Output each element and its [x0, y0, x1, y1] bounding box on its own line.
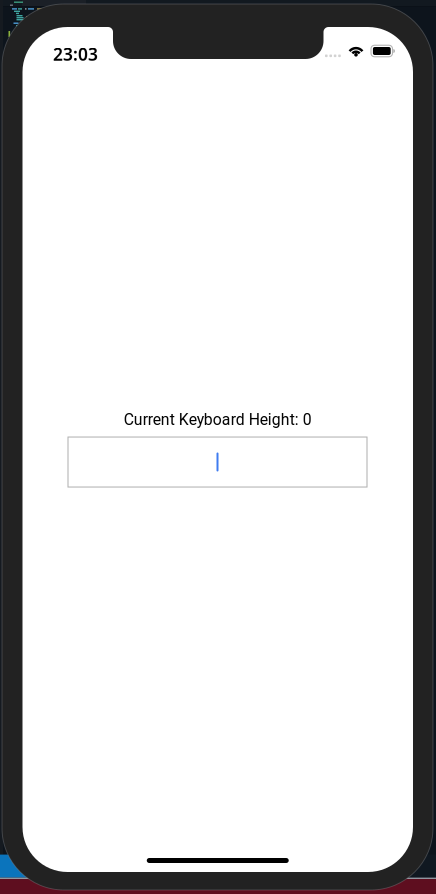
staticText: 23:03	[53, 42, 98, 65]
staticText: Current Keyboard Height: 0	[124, 410, 312, 429]
button[interactable]: Text field	[68, 437, 367, 487]
